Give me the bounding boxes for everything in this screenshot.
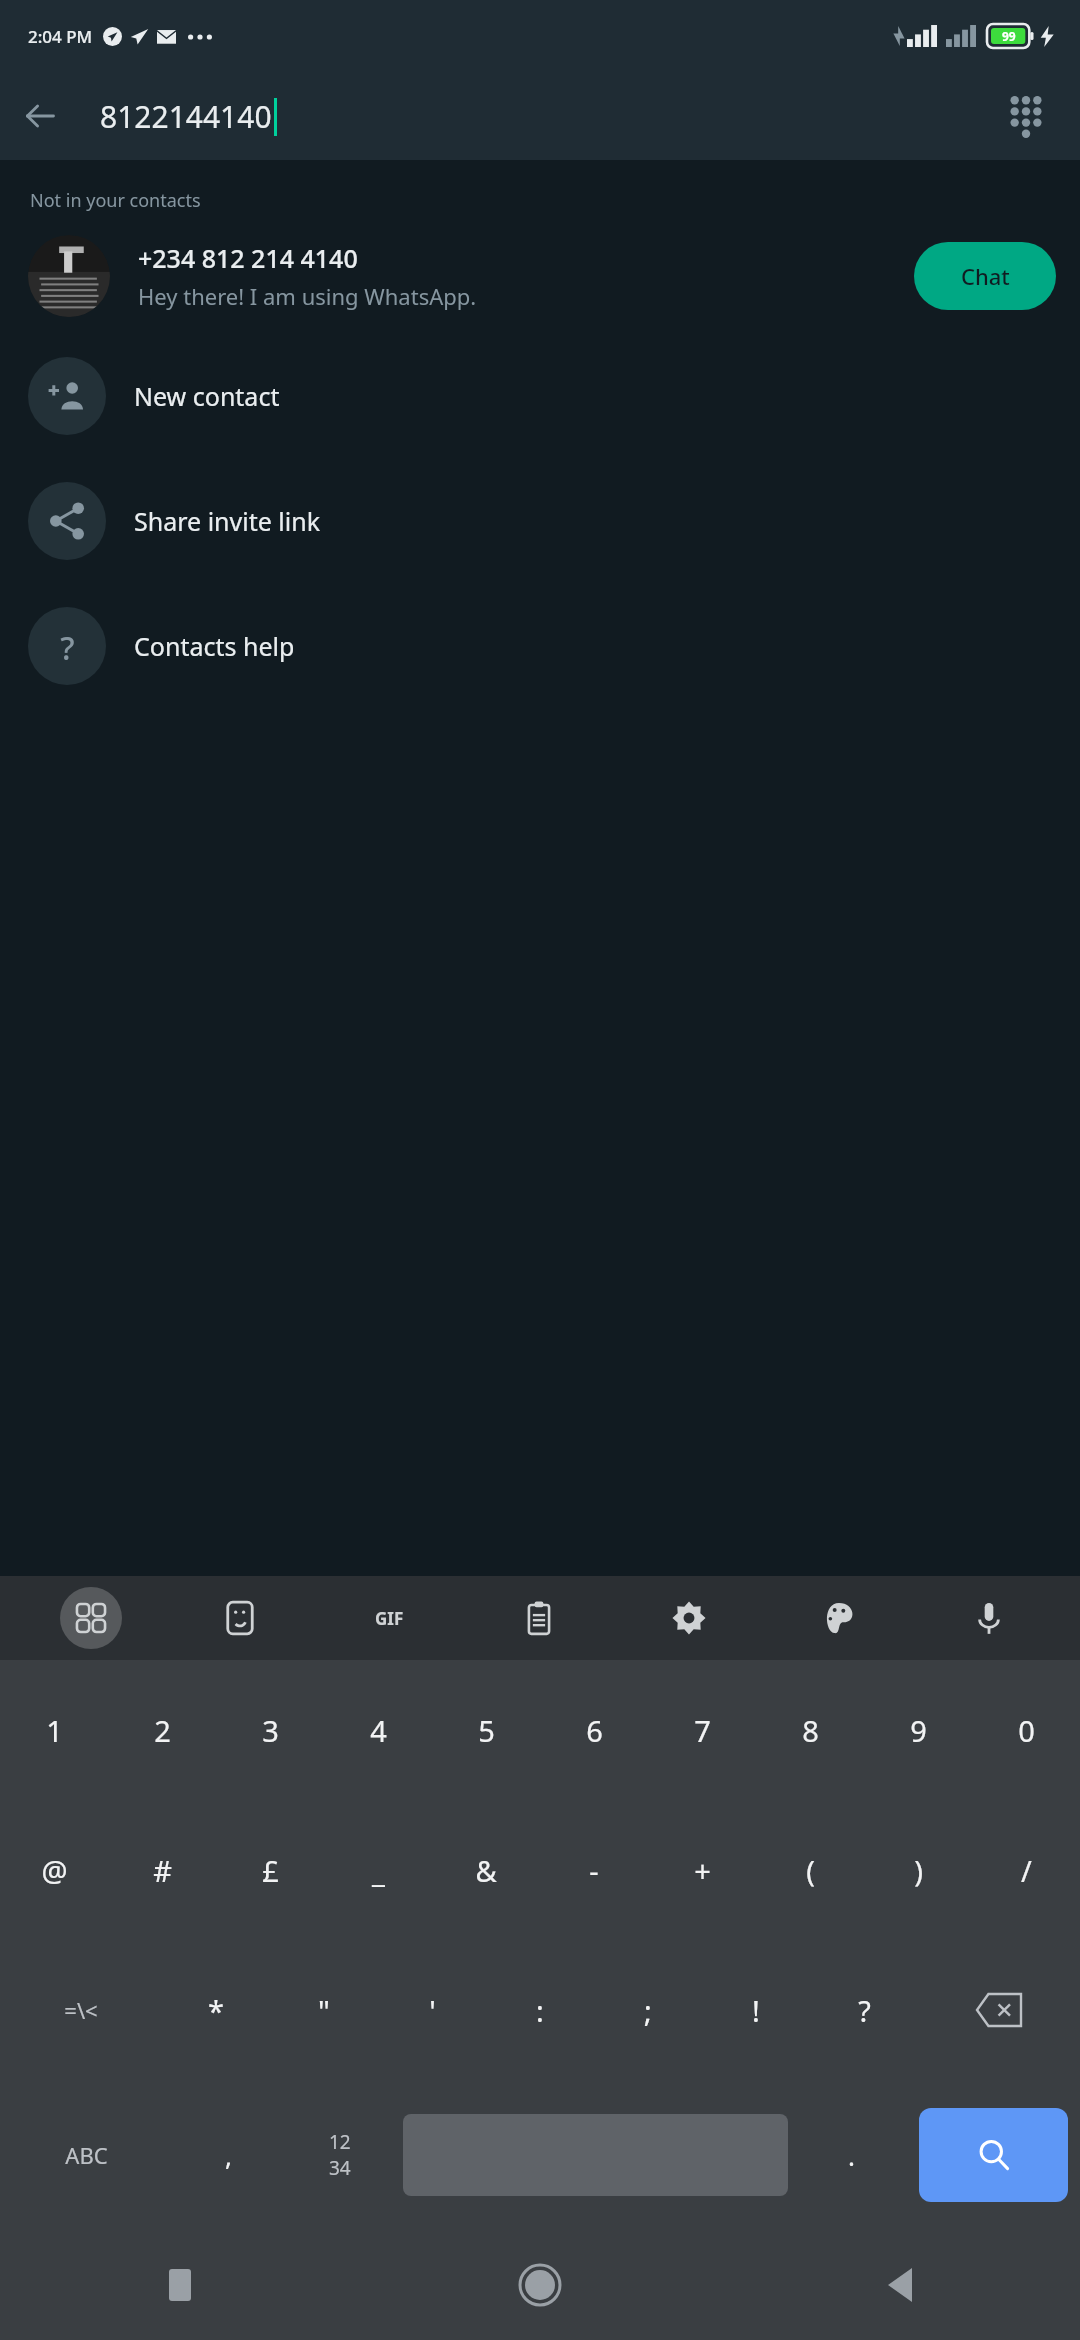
staticText: ABC bbox=[65, 2140, 108, 2170]
staticText: : bbox=[536, 1991, 544, 2030]
button[interactable]: _ bbox=[324, 1800, 432, 1940]
staticText: 7 bbox=[694, 1711, 711, 1750]
button[interactable]: Dial pad bbox=[994, 84, 1058, 148]
staticText: 8122144140 bbox=[100, 96, 272, 137]
staticText: @ bbox=[41, 1851, 68, 1890]
button[interactable]: Keyboard tool bbox=[314, 1576, 464, 1660]
button[interactable]: +234 812 214 4140 bbox=[0, 235, 1080, 317]
button[interactable]: 1 bbox=[0, 1660, 108, 1800]
staticText: _ bbox=[372, 1851, 385, 1890]
staticText: 8 bbox=[802, 1711, 819, 1750]
staticText: - bbox=[589, 1851, 599, 1890]
staticText: ! bbox=[752, 1991, 760, 2030]
button[interactable]: Keyboard tool bbox=[464, 1576, 614, 1660]
staticText: , bbox=[225, 2138, 232, 2173]
button[interactable]: @ bbox=[0, 1800, 108, 1940]
button[interactable]: Backspace bbox=[918, 1940, 1080, 2080]
staticText: 6 bbox=[586, 1711, 603, 1750]
staticText: £ bbox=[262, 1851, 279, 1890]
button[interactable]: Keyboard tool bbox=[764, 1576, 914, 1660]
staticText: ; bbox=[644, 1991, 652, 2030]
staticText: 12 bbox=[329, 2129, 351, 2155]
button[interactable]: 3 bbox=[216, 1660, 324, 1800]
staticText: 99 bbox=[1002, 28, 1016, 44]
button[interactable]: Recent apps bbox=[0, 2230, 360, 2340]
button[interactable]: ! bbox=[702, 1940, 810, 2080]
staticText: 4 bbox=[370, 1711, 387, 1750]
staticText: ' bbox=[429, 1991, 436, 2030]
button[interactable]: ? bbox=[810, 1940, 918, 2080]
staticText: ( bbox=[806, 1851, 815, 1890]
button[interactable]: 4 bbox=[324, 1660, 432, 1800]
button[interactable]: Keyboard tool bbox=[165, 1576, 314, 1660]
staticText: . bbox=[848, 2138, 855, 2173]
staticText: 2 bbox=[154, 1711, 171, 1750]
staticText: ? bbox=[858, 1991, 871, 2030]
button[interactable]: Search bbox=[919, 2108, 1068, 2202]
button[interactable]: + bbox=[648, 1800, 756, 1940]
button[interactable]: ' bbox=[378, 1940, 486, 2080]
button[interactable]: " bbox=[270, 1940, 378, 2080]
staticText: " bbox=[318, 1991, 330, 2030]
button[interactable]: New contact bbox=[0, 333, 1080, 458]
button[interactable]: ? bbox=[0, 583, 1080, 708]
staticText: =\< bbox=[64, 1995, 98, 2025]
button[interactable]: . bbox=[796, 2080, 907, 2230]
button[interactable]: Keyboard tool bbox=[16, 1576, 165, 1660]
staticText: # bbox=[153, 1851, 172, 1890]
staticText: Contacts help bbox=[134, 629, 295, 663]
staticText: Share invite link bbox=[134, 504, 321, 538]
button[interactable]: =\< bbox=[0, 1940, 162, 2080]
button[interactable]: ABC bbox=[0, 2080, 173, 2230]
staticText: Hey there! I am using WhatsApp. bbox=[138, 281, 477, 311]
button[interactable]: 9 bbox=[864, 1660, 972, 1800]
staticText: 3 bbox=[262, 1711, 279, 1750]
staticText: 5 bbox=[478, 1711, 495, 1750]
staticText: / bbox=[1021, 1851, 1032, 1890]
button[interactable]: 2 bbox=[108, 1660, 216, 1800]
button[interactable]: ; bbox=[594, 1940, 702, 2080]
button[interactable]: - bbox=[540, 1800, 648, 1940]
staticText: ? bbox=[60, 626, 75, 666]
staticText: 2:04 PM bbox=[28, 25, 93, 48]
button[interactable]: : bbox=[486, 1940, 594, 2080]
staticText: New contact bbox=[134, 379, 280, 413]
staticText: GIF bbox=[375, 1607, 404, 1630]
button[interactable]: / bbox=[972, 1800, 1080, 1940]
button[interactable]: Share invite link bbox=[0, 458, 1080, 583]
button[interactable]: ) bbox=[864, 1800, 972, 1940]
staticText: & bbox=[475, 1851, 497, 1890]
button[interactable]: 8 bbox=[756, 1660, 864, 1800]
button[interactable]: Chat bbox=[914, 242, 1056, 310]
button[interactable]: * bbox=[162, 1940, 270, 2080]
staticText: * bbox=[208, 1991, 224, 2030]
button[interactable]: Back bbox=[10, 86, 70, 146]
staticText: +234 812 214 4140 bbox=[138, 241, 358, 275]
staticText: 34 bbox=[329, 2155, 351, 2181]
button[interactable]: 6 bbox=[540, 1660, 648, 1800]
button[interactable]: £ bbox=[216, 1800, 324, 1940]
button[interactable]: Home bbox=[360, 2230, 720, 2340]
staticText: Not in your contacts bbox=[30, 188, 201, 213]
staticText: 9 bbox=[910, 1711, 927, 1750]
button[interactable]: 0 bbox=[972, 1660, 1080, 1800]
button[interactable]: & bbox=[432, 1800, 540, 1940]
button[interactable]: ( bbox=[756, 1800, 864, 1940]
button[interactable]: # bbox=[108, 1800, 216, 1940]
button[interactable]: 7 bbox=[648, 1660, 756, 1800]
button[interactable]: Keyboard tool bbox=[914, 1576, 1064, 1660]
button[interactable]: Keyboard tool bbox=[614, 1576, 764, 1660]
button[interactable]: 5 bbox=[432, 1660, 540, 1800]
button[interactable]: , bbox=[173, 2080, 284, 2230]
staticText: 0 bbox=[1018, 1711, 1035, 1750]
button[interactable]: Back bbox=[720, 2230, 1080, 2340]
staticText: 1 bbox=[46, 1711, 63, 1750]
staticText: ) bbox=[914, 1851, 923, 1890]
staticText: + bbox=[694, 1851, 711, 1890]
staticText: Chat bbox=[961, 261, 1010, 291]
button[interactable]: 12 bbox=[284, 2080, 395, 2230]
